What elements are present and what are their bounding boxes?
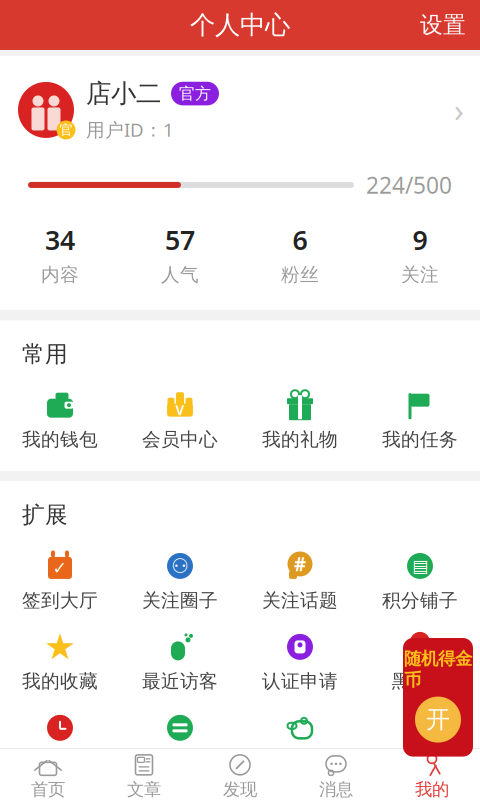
button[interactable]: 消息 [288,748,384,800]
button[interactable]: 首页 [0,748,96,800]
staticText: 我的任务 [382,428,458,451]
staticText: 官方 [179,84,211,103]
staticText: 我的收藏 [22,670,98,693]
button[interactable]: 9 [360,222,480,286]
button[interactable]: 认证申请 [240,622,360,703]
button[interactable]: 我的钱包 [0,380,120,461]
staticText: 57 [165,222,195,257]
button[interactable]: 34 [0,222,120,286]
staticText: 进群特效 [142,751,218,774]
button[interactable]: ▤ [360,541,480,622]
staticText: 浏览记录 [22,751,98,774]
button[interactable]: 摇公挑战 [240,703,360,784]
staticText: 摇公挑战 [262,751,338,774]
button[interactable]: # [240,541,360,622]
staticText: ⚇ [171,555,189,577]
button[interactable]: 进群特效 [120,703,240,784]
staticText: 随机得金币 [404,648,472,691]
button[interactable]: 6 [240,222,360,286]
button[interactable]: 我的任务 [360,380,480,461]
staticText: 设置 [420,11,466,39]
staticText: 个人中心 [190,9,290,40]
staticText: # [294,552,306,576]
staticText: 9 [412,222,427,257]
staticText: 发现 [223,779,257,800]
staticText: 粉丝 [281,263,319,286]
button[interactable]: 我的礼物 [240,380,360,461]
staticText: 会员中心 [142,428,218,451]
button[interactable]: 超级转盘 [360,703,480,784]
staticText: ▤ [412,556,428,576]
button[interactable]: 发现 [192,748,288,800]
staticText: 6 [292,222,307,257]
staticText: 最近访客 [142,670,218,693]
button[interactable]: 我的 [384,748,480,800]
button[interactable]: 随机得金币 [403,638,473,757]
button[interactable]: 设置 [406,3,480,47]
staticText: 官 [59,122,72,138]
button[interactable]: 文章 [96,748,192,800]
staticText: 首页 [31,779,65,800]
staticText: 超级转盘 [382,751,458,774]
staticText: 扩展 [22,501,68,529]
staticText: ✓ [52,558,67,578]
staticText: 店小二 [86,78,161,109]
button[interactable]: 黑名单 [360,622,480,703]
staticText: 关注 [401,263,439,286]
staticText: 消息 [319,779,353,800]
button[interactable]: V [120,380,240,461]
staticText: 224/500 [366,170,452,200]
button[interactable]: 官 [0,56,480,142]
button[interactable]: 最近访客 [120,622,240,703]
staticText: 内容 [41,263,79,286]
button[interactable]: ⚇ [120,541,240,622]
staticText: 开 [426,705,450,734]
staticText: 我的 [415,779,449,800]
button[interactable]: 57 [120,222,240,286]
staticText: 34 [45,222,75,257]
staticText: ★ [44,626,76,667]
staticText: 积分铺子 [382,589,458,612]
staticText: 常用 [22,340,68,368]
staticText: 关注圈子 [142,589,218,612]
staticText: 认证申请 [262,670,338,693]
staticText: 关注话题 [262,589,338,612]
staticText: 我的礼物 [262,428,338,451]
button[interactable]: 浏览记录 [0,703,120,784]
staticText: 我的钱包 [22,428,98,451]
button[interactable]: ✓ [0,541,120,622]
staticText: 文章 [127,779,161,800]
staticText: 用户ID：1 [86,117,174,142]
staticText: 人气 [161,263,199,286]
staticText: 黑名单 [391,670,448,693]
button[interactable]: ★ [0,622,120,703]
staticText: V [175,401,184,419]
staticText: › [454,89,464,131]
staticText: 签到大厅 [22,589,98,612]
